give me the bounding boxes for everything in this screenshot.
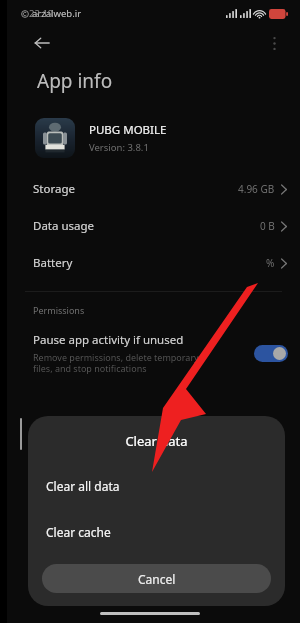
staticText: 22:19 — [29, 7, 54, 20]
staticText: Cancel — [138, 571, 176, 587]
staticText: Clear all data — [46, 478, 120, 494]
button[interactable]: PUBG MOBILE — [35, 118, 272, 158]
staticText: Clear cache — [46, 524, 111, 540]
staticText: PUBG MOBILE — [89, 122, 167, 138]
staticText: Clear data — [28, 432, 285, 450]
staticText: 4.96 GB — [238, 182, 275, 196]
button[interactable]: Cancel — [42, 564, 271, 593]
button[interactable]: Storage — [7, 170, 300, 207]
staticText: Version: 3.8.1 — [89, 141, 149, 154]
button[interactable]: Back — [29, 30, 55, 56]
staticText: Battery — [33, 255, 73, 271]
button[interactable]: Data usage — [7, 207, 300, 244]
button[interactable]: Clear cache — [28, 514, 285, 550]
button[interactable]: Pause app activity if unused — [33, 332, 288, 375]
staticText: Storage — [33, 181, 75, 197]
staticText: Permissions — [33, 304, 85, 316]
staticText: App info — [37, 68, 113, 94]
staticText: Data usage — [33, 218, 95, 234]
button[interactable]: Pause app activity toggle — [254, 345, 288, 362]
staticText: % — [266, 256, 275, 270]
button[interactable]: Clear all data — [28, 468, 285, 504]
button[interactable]: More options — [262, 31, 286, 55]
staticText: Pause app activity if unused — [33, 332, 184, 348]
staticText: arzalweb.ir — [32, 7, 82, 20]
staticText: Remove permissions, delete temporary fil… — [33, 351, 199, 375]
staticText: 0 B — [260, 219, 275, 233]
button[interactable]: Battery — [7, 244, 300, 281]
